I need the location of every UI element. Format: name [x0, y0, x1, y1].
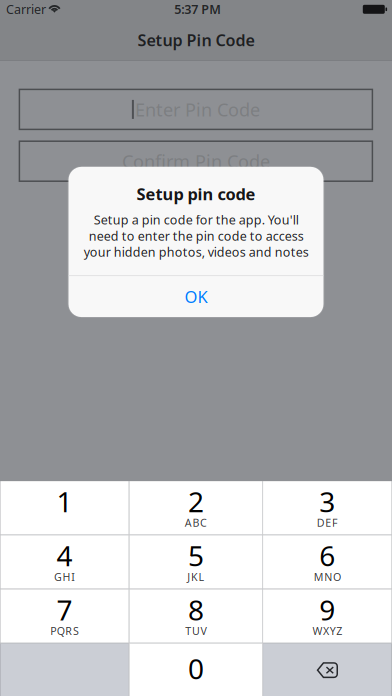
button[interactable]: 2 — [129, 481, 262, 534]
staticText: 5 — [188, 536, 204, 574]
staticText: 7 — [57, 590, 73, 629]
staticText: 3 — [319, 482, 335, 520]
button[interactable]: 6 — [263, 535, 392, 589]
staticText: Setup a pin code for the app. You'll nee… — [83, 211, 308, 260]
staticText: ABC — [185, 515, 207, 530]
staticText: 5:37 PM — [174, 1, 221, 18]
staticText: JKL — [187, 569, 204, 584]
staticText: PQRS — [50, 624, 79, 638]
staticText: DEF — [317, 515, 338, 530]
staticText: Carrier — [6, 1, 46, 18]
button[interactable]: 9 — [263, 589, 392, 643]
staticText: 4 — [57, 536, 73, 574]
staticText: Setup Pin Code — [137, 29, 254, 51]
staticText: OK — [184, 285, 207, 308]
button[interactable]: 1 — [0, 481, 129, 534]
button[interactable]: 7 — [0, 589, 129, 643]
staticText: 0 — [188, 649, 204, 687]
staticText: Confirm Pin Code — [122, 149, 270, 174]
staticText: 9 — [319, 590, 335, 629]
staticText: Setup pin code — [136, 183, 255, 205]
button[interactable]: 3 — [263, 481, 392, 534]
staticText: 1 — [57, 482, 73, 520]
staticText: WXYZ — [312, 624, 342, 638]
button[interactable]: Delete — [263, 643, 392, 696]
staticText: 2 — [188, 482, 204, 520]
staticText: 8 — [188, 590, 204, 629]
staticText: 6 — [319, 536, 335, 574]
staticText: Enter Pin Code — [135, 97, 260, 122]
button[interactable]: 4 — [0, 535, 129, 589]
button[interactable]: 8 — [129, 589, 262, 643]
staticText: TUV — [185, 624, 206, 638]
staticText: MNO — [314, 569, 341, 584]
button[interactable]: OK — [68, 276, 323, 317]
button[interactable]: 0 — [129, 643, 262, 696]
staticText: GHI — [54, 569, 75, 584]
button[interactable]: 5 — [129, 535, 262, 589]
